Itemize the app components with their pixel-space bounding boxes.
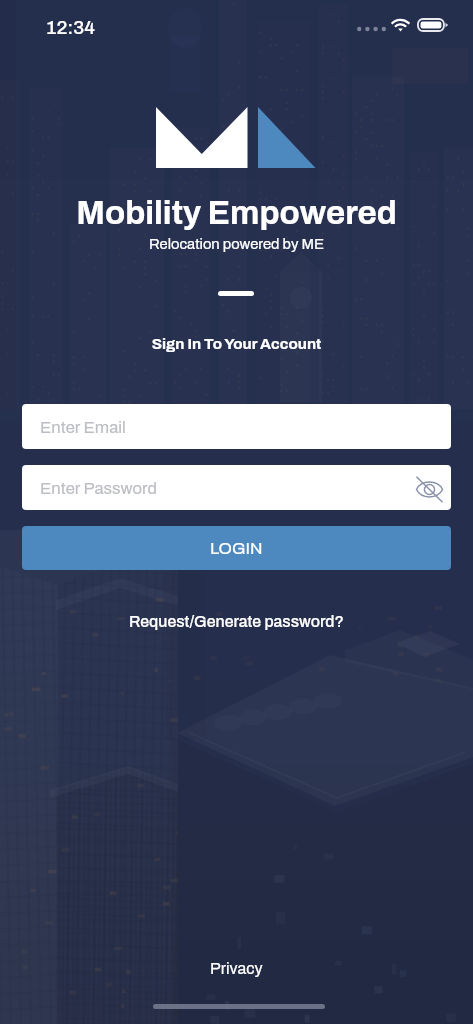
button[interactable]: Enter Email xyxy=(22,404,451,449)
button[interactable]: Request/Generate password? xyxy=(119,608,354,635)
staticText: Sign In To Your Account xyxy=(0,336,473,353)
staticText: Mobility Empowered xyxy=(0,195,473,231)
button[interactable]: Show password xyxy=(409,468,449,508)
staticText: Relocation powered by ME xyxy=(0,236,473,252)
button[interactable]: LOGIN xyxy=(22,526,451,570)
staticText: Enter Email xyxy=(40,418,126,436)
button[interactable]: Enter Password xyxy=(22,465,451,510)
staticText: 12:34 xyxy=(46,17,95,38)
staticText: LOGIN xyxy=(210,539,263,557)
staticText: Enter Password xyxy=(40,479,157,497)
button[interactable]: Privacy xyxy=(200,956,273,981)
